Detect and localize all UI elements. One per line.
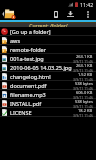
staticText: 538 bytes <box>75 81 93 86</box>
staticText: LICENSE <box>10 109 73 116</box>
staticText: 3/9/11 11:46 <box>73 77 93 81</box>
staticText: 538 bytes <box>75 99 93 104</box>
button[interactable]: Download <box>65 8 76 20</box>
staticText: changelog.html <box>10 73 73 80</box>
staticText: 3/9/11 11:46 <box>73 59 93 63</box>
staticText: 18.2 KB <box>78 108 93 113</box>
staticText: INSTALL.pdf <box>10 100 73 107</box>
staticText: 3/9/11 11:46 <box>73 113 93 117</box>
button[interactable]: LICENSE <box>0 108 96 117</box>
button[interactable]: remote-folder <box>0 45 96 54</box>
button[interactable]: INSTALL.pdf <box>0 99 96 108</box>
button[interactable]: More options <box>83 8 93 20</box>
staticText: [Go up a folder] <box>10 28 93 35</box>
staticText: remote-folder <box>10 46 93 53</box>
staticText: aws <box>10 37 93 44</box>
button[interactable]: document.pdf <box>0 81 96 90</box>
staticText: 001a-test.jpg <box>10 55 73 62</box>
button[interactable]: 2010-06-05 14.03.25.jpg <box>0 63 96 72</box>
staticText: 263.1 KB <box>76 54 93 59</box>
button[interactable]: aws <box>0 36 96 45</box>
button[interactable]: filename.mp3 <box>0 90 96 99</box>
staticText: 3/9/11 11:46 <box>73 104 93 108</box>
button[interactable]: changelog.html <box>0 72 96 81</box>
button[interactable]: Device storage <box>50 8 61 20</box>
staticText: 1.52 KB <box>78 72 93 77</box>
staticText: filename.mp3 <box>10 91 73 98</box>
staticText: 606.0 KB <box>76 90 93 95</box>
button[interactable]: Up one folder <box>0 8 18 20</box>
staticText: 3/9/11 11:46 <box>73 95 93 99</box>
staticText: 3/9/11 11:46 <box>73 68 93 72</box>
staticText: 3/9/11 11:46 <box>73 86 93 90</box>
staticText: 263.1 KB <box>76 63 93 68</box>
button[interactable]: 001a-test.jpg <box>0 54 96 63</box>
button[interactable]: [Go up a folder] <box>0 27 96 36</box>
staticText: 11:42 <box>80 1 94 8</box>
staticText: Current: /folder/ <box>29 23 68 27</box>
staticText: 2010-06-05 14.03.25.jpg <box>10 64 73 71</box>
staticText: document.pdf <box>10 82 73 89</box>
